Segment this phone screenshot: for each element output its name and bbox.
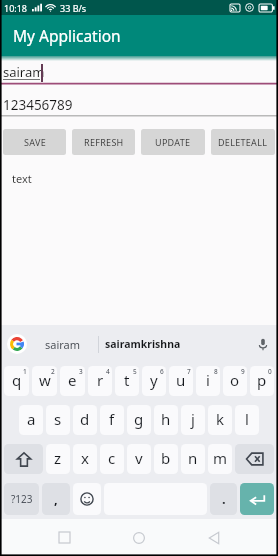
staticText: w [39,370,51,390]
button[interactable]: Home [119,519,159,556]
button[interactable]: DELETEALL [211,129,275,155]
staticText: , [54,490,58,508]
button[interactable]: , [42,483,70,515]
button[interactable]: REFRESH [72,129,135,155]
button[interactable]: Shift [4,444,43,474]
button[interactable]: c [100,444,124,474]
button[interactable]: g [127,405,151,435]
button[interactable]: r [88,366,112,396]
button[interactable]: n [181,444,205,474]
staticText: g [134,409,144,429]
button[interactable]: h [154,405,178,435]
button[interactable]: v [127,444,151,474]
button[interactable]: Recent apps [44,519,84,556]
staticText: v [135,448,143,468]
button[interactable]: sairam [27,325,98,363]
staticText: 8 [214,367,218,376]
button[interactable]: UPDATE [141,129,205,155]
button[interactable]: a [19,405,43,435]
button[interactable]: sairamkrishna [99,325,250,363]
staticText: q [12,370,22,390]
staticText: h [161,409,171,429]
button[interactable]: Back [194,519,234,556]
button[interactable]: Voice input [250,325,276,363]
staticText: y [150,370,158,390]
staticText: 123456789 [3,96,73,114]
staticText: 3 [79,367,83,376]
staticText: m [213,448,228,468]
staticText: n [188,448,198,468]
staticText: 1 [23,367,27,376]
staticText: REFRESH [84,136,124,148]
button[interactable]: d [73,405,97,435]
button[interactable]: i [196,366,220,396]
button[interactable]: m [208,444,232,474]
staticText: text [12,171,32,186]
staticText: t [124,370,130,390]
staticText: 2 [51,367,55,376]
staticText: 33 B/s [60,2,87,14]
staticText: ?123 [11,492,33,506]
button[interactable]: x [73,444,97,474]
staticText: UPDATE [155,136,191,148]
staticText: . [222,490,226,508]
button[interactable]: My Application [0,15,278,56]
button[interactable]: q [4,366,29,396]
button[interactable]: f [100,405,124,435]
staticText: j [191,409,195,429]
staticText: u [176,370,186,390]
button[interactable]: o [223,366,247,396]
staticText: z [54,448,62,468]
staticText: x [81,448,89,468]
staticText: p [257,370,267,390]
button[interactable]: p [250,366,274,396]
button[interactable]: t [115,366,139,396]
staticText: c [108,448,116,468]
staticText: a [27,409,36,429]
button[interactable]: b [154,444,178,474]
staticText: f [109,409,115,429]
staticText: DELETEALL [218,136,268,148]
button[interactable]: e [60,366,85,396]
staticText: 10:18 [4,2,28,14]
button[interactable]: u [169,366,193,396]
button[interactable]: Google search [7,334,27,354]
button[interactable]: Emoji [73,483,101,515]
button[interactable]: y [142,366,166,396]
button[interactable]: z [46,444,70,474]
button[interactable]: w [32,366,57,396]
button[interactable]: j [181,405,205,435]
staticText: SAVE [24,136,46,148]
button[interactable]: ?123 [4,483,39,515]
staticText: i [206,370,210,390]
staticText: s [54,409,62,429]
button[interactable]: s [46,405,70,435]
staticText: 7 [187,367,191,376]
staticText: sairam [3,63,45,81]
button[interactable]: k [208,405,232,435]
button[interactable]: . [210,483,237,515]
button[interactable]: Backspace [235,444,274,474]
staticText: sairam [45,337,81,352]
staticText: My Application [13,25,121,46]
staticText: 5 [133,367,137,376]
staticText: r [97,370,104,390]
staticText: d [80,409,90,429]
staticText: o [230,370,240,390]
staticText: l [245,409,249,429]
staticText: 6 [160,367,164,376]
button[interactable]: Enter [240,483,274,515]
staticText: 9 [241,367,245,376]
staticText: sairamkrishna [105,337,181,351]
staticText: k [216,409,225,429]
button[interactable]: l [235,405,259,435]
staticText: 0 [268,367,272,376]
button[interactable]: SAVE [3,129,66,155]
staticText: e [68,370,77,390]
staticText: b [161,448,171,468]
staticText: 4 [106,367,110,376]
